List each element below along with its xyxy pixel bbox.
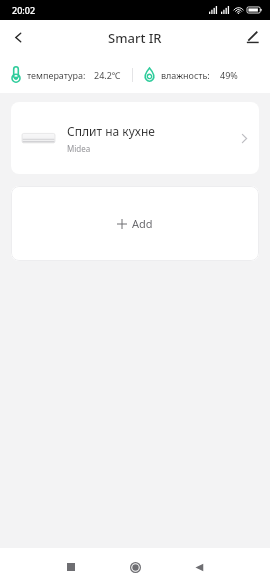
staticText: 20:02 <box>12 4 36 16</box>
staticText: 24.2℃ <box>94 69 121 81</box>
staticText: Midea <box>67 143 91 154</box>
button[interactable]: Back <box>0 20 36 55</box>
button[interactable]: Home <box>120 552 150 582</box>
staticText: влажность: <box>161 69 210 81</box>
button[interactable]: Сплит на кухне <box>11 102 259 174</box>
button[interactable]: Edit <box>234 20 270 55</box>
staticText: Smart IR <box>108 29 162 47</box>
staticText: Add <box>132 216 153 231</box>
button[interactable]: Back <box>184 552 214 582</box>
staticText: температура: <box>27 69 86 81</box>
button[interactable]: Recents <box>56 552 86 582</box>
button[interactable]: Add <box>11 186 259 261</box>
staticText: Сплит на кухне <box>67 123 155 139</box>
staticText: 49% <box>220 69 238 81</box>
